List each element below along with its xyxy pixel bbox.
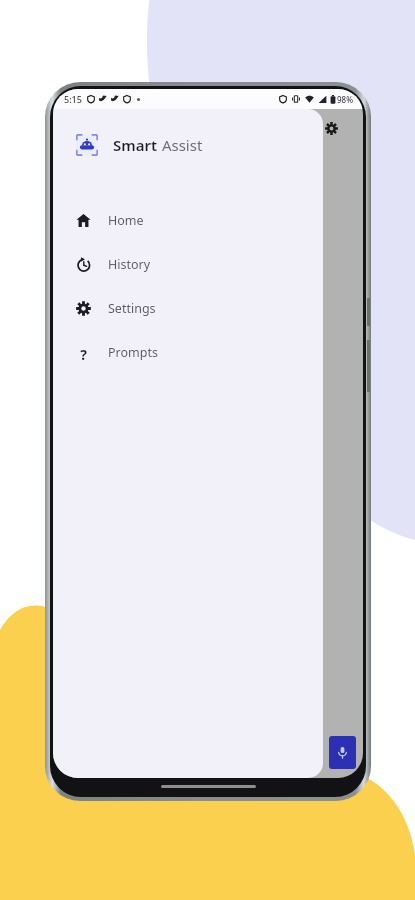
button[interactable]: ? <box>53 330 323 374</box>
staticText: Prompts <box>108 344 158 361</box>
button[interactable]: Settings <box>319 116 343 140</box>
staticText: Smart <box>113 135 158 155</box>
button[interactable]: History <box>53 242 323 286</box>
button[interactable]: Smart <box>53 125 323 165</box>
staticText: Settings <box>108 300 156 317</box>
staticText: Assist <box>158 135 203 155</box>
staticText: History <box>108 256 151 273</box>
staticText: 98% <box>337 94 353 105</box>
button[interactable]: Voice input <box>329 736 356 769</box>
button[interactable]: Settings <box>53 286 323 330</box>
button[interactable]: Home <box>53 198 323 242</box>
staticText: ? <box>80 345 87 360</box>
staticText: Home <box>108 212 144 229</box>
staticText: 5:15 <box>64 93 82 105</box>
